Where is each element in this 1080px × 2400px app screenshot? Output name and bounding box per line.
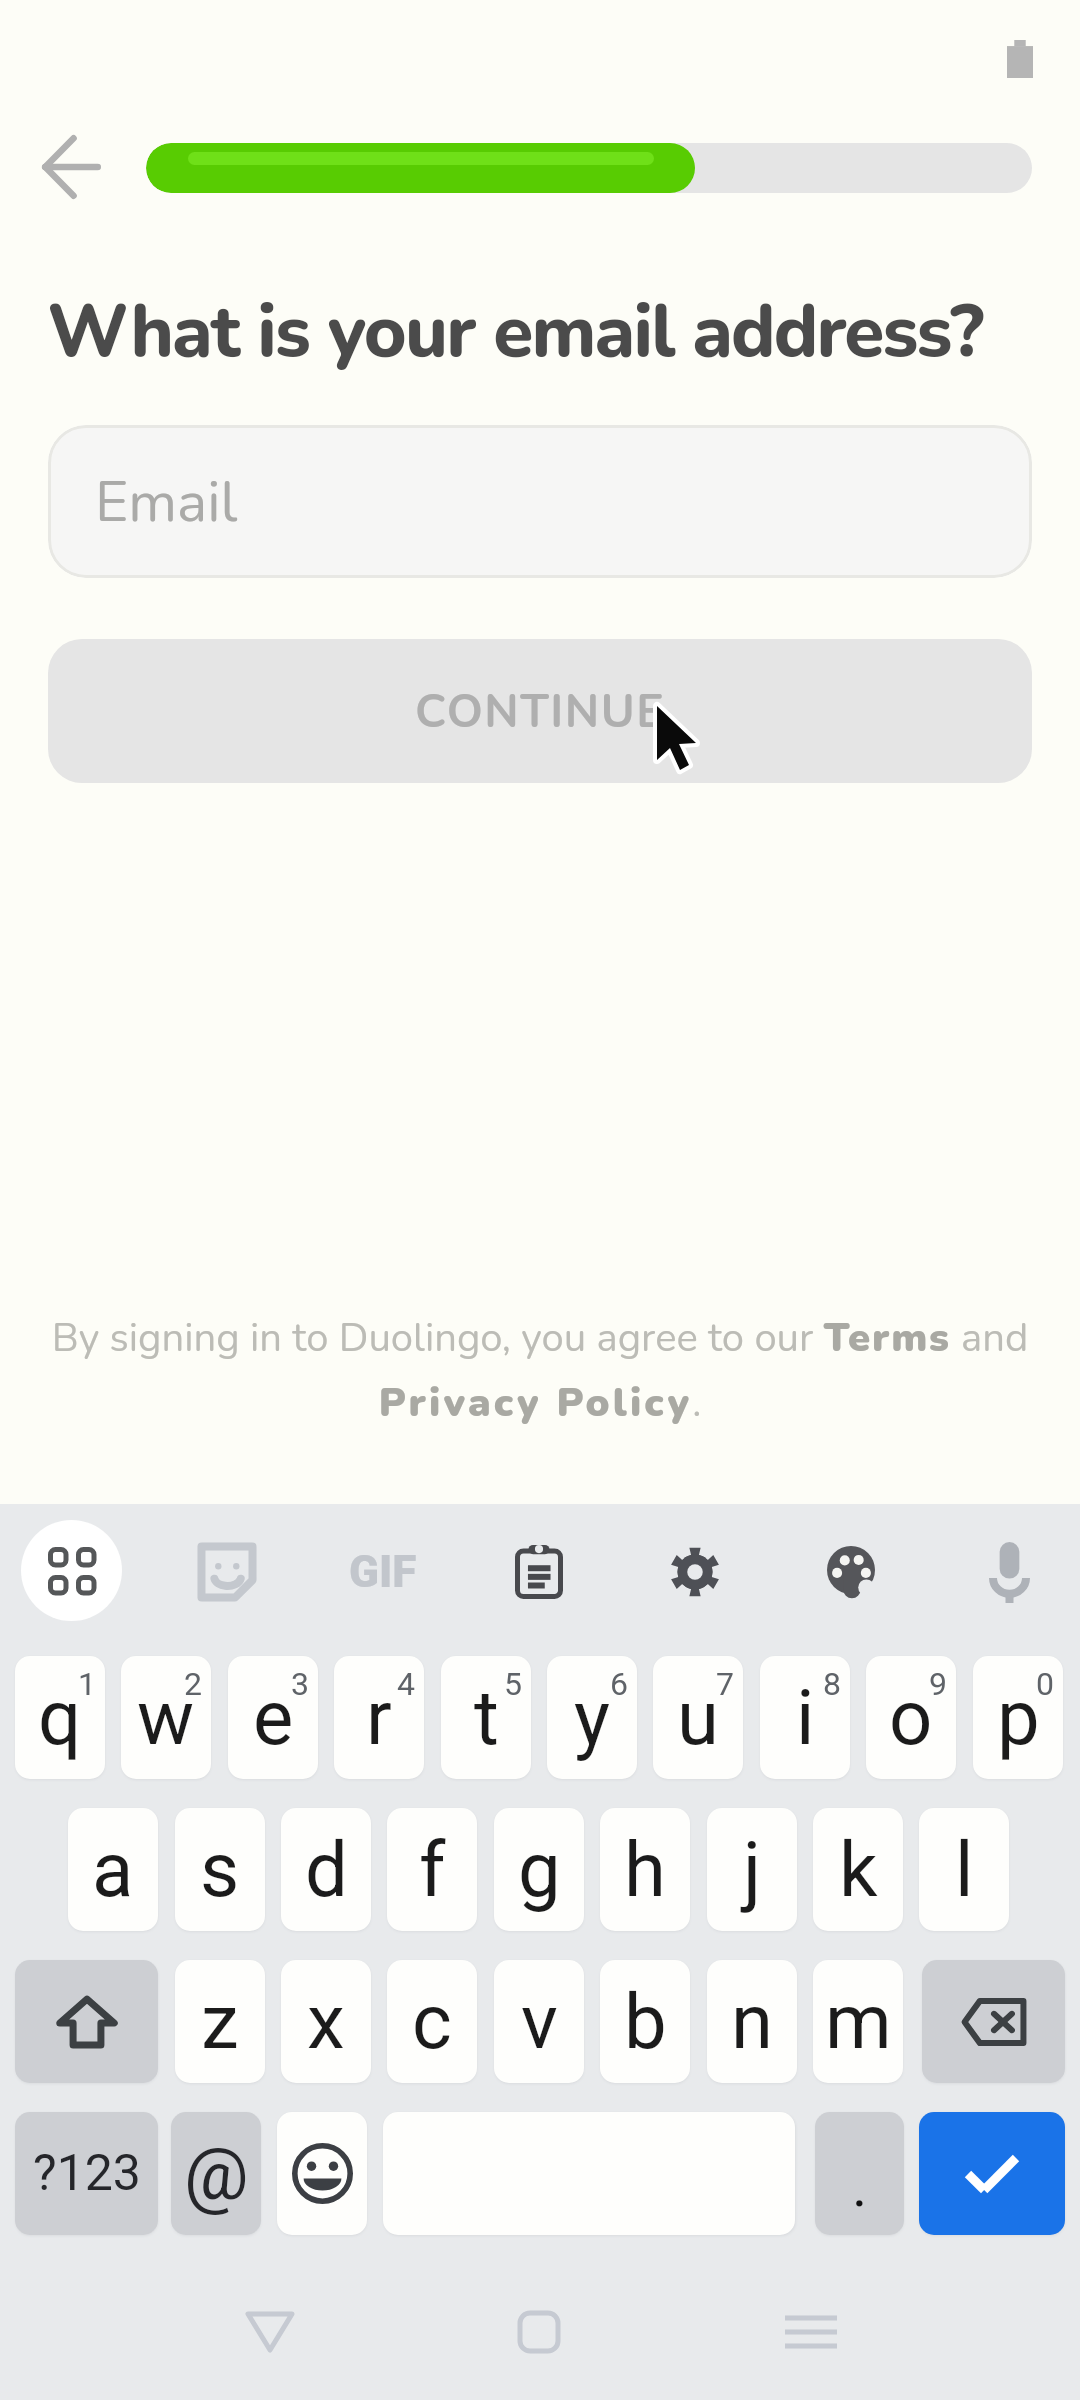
staticText: What is your email address? bbox=[47, 282, 983, 382]
staticText: f bbox=[419, 1825, 446, 1914]
button[interactable]: h bbox=[600, 1808, 690, 1931]
staticText: p bbox=[997, 1673, 1040, 1762]
button[interactable]: CONTINUE bbox=[48, 639, 1032, 783]
staticText: y bbox=[574, 1673, 610, 1762]
staticText: w bbox=[137, 1673, 195, 1762]
staticText: 6 bbox=[610, 1665, 628, 1703]
staticText: 9 bbox=[929, 1665, 947, 1703]
button[interactable]: Back bbox=[200, 2282, 340, 2382]
button[interactable]: s bbox=[175, 1808, 265, 1931]
staticText: CONTINUE bbox=[415, 680, 666, 743]
staticText: a bbox=[92, 1825, 134, 1914]
staticText: 4 bbox=[397, 1665, 415, 1703]
staticText: r bbox=[366, 1673, 392, 1762]
staticText: i bbox=[796, 1673, 815, 1762]
button[interactable]: Recent apps bbox=[741, 2282, 881, 2382]
staticText: 1 bbox=[78, 1665, 96, 1703]
button[interactable]: Stickers bbox=[160, 1513, 294, 1631]
button[interactable]: m bbox=[813, 1960, 903, 2083]
button[interactable]: v bbox=[494, 1960, 584, 2083]
button[interactable]: t bbox=[441, 1656, 531, 1779]
button[interactable]: Voice input bbox=[942, 1513, 1076, 1631]
staticText: 8 bbox=[823, 1665, 841, 1703]
staticText: n bbox=[731, 1977, 773, 2066]
button[interactable]: f bbox=[387, 1808, 477, 1931]
button[interactable]: q bbox=[15, 1656, 105, 1779]
staticText: d bbox=[305, 1825, 348, 1914]
button[interactable]: @ bbox=[171, 2112, 261, 2235]
button[interactable]: l bbox=[919, 1808, 1009, 1931]
staticText: o bbox=[889, 1673, 933, 1762]
staticText: ?123 bbox=[33, 2144, 141, 2203]
button[interactable]: u bbox=[653, 1656, 743, 1779]
staticText: g bbox=[518, 1825, 561, 1914]
button[interactable]: d bbox=[281, 1808, 371, 1931]
button[interactable]: g bbox=[494, 1808, 584, 1931]
staticText: h bbox=[624, 1825, 666, 1914]
button[interactable]: Themes bbox=[784, 1513, 918, 1631]
button[interactable]: Email bbox=[48, 425, 1032, 578]
staticText: 2 bbox=[184, 1665, 202, 1703]
button[interactable]: . bbox=[815, 2112, 904, 2235]
button[interactable]: j bbox=[707, 1808, 797, 1931]
button[interactable]: GIF bbox=[316, 1513, 450, 1631]
staticText: GIF bbox=[349, 1546, 417, 1598]
staticText: q bbox=[38, 1673, 82, 1762]
button[interactable]: x bbox=[281, 1960, 371, 2083]
staticText: c bbox=[412, 1977, 452, 2066]
staticText: 3 bbox=[291, 1665, 309, 1703]
staticText: t bbox=[474, 1673, 499, 1762]
staticText: By signing in to Duolingo, you agree to … bbox=[24, 1311, 1056, 1430]
staticText: @ bbox=[184, 2132, 249, 2216]
button[interactable]: o bbox=[866, 1656, 956, 1779]
button[interactable]: Clipboard bbox=[472, 1513, 606, 1631]
button[interactable]: Shift bbox=[15, 1960, 158, 2083]
button[interactable]: e bbox=[228, 1656, 318, 1779]
button[interactable]: Home bbox=[469, 2282, 609, 2382]
staticText: 0 bbox=[1036, 1665, 1054, 1703]
staticText: u bbox=[677, 1673, 719, 1762]
staticText: z bbox=[201, 1977, 239, 2066]
staticText: l bbox=[955, 1825, 974, 1914]
button[interactable]: p bbox=[973, 1656, 1063, 1779]
staticText: e bbox=[253, 1673, 294, 1762]
staticText: 5 bbox=[504, 1665, 522, 1703]
staticText: j bbox=[743, 1825, 762, 1914]
button[interactable]: ?123 bbox=[15, 2112, 158, 2235]
staticText: k bbox=[839, 1825, 878, 1914]
button[interactable]: Backspace bbox=[922, 1960, 1065, 2083]
button[interactable]: a bbox=[68, 1808, 158, 1931]
button[interactable]: i bbox=[760, 1656, 850, 1779]
button[interactable]: y bbox=[547, 1656, 637, 1779]
staticText: b bbox=[624, 1977, 667, 2066]
button[interactable]: n bbox=[707, 1960, 797, 2083]
button[interactable]: c bbox=[387, 1960, 477, 2083]
staticText: s bbox=[200, 1825, 240, 1914]
button[interactable]: k bbox=[813, 1808, 903, 1931]
staticText: . bbox=[852, 2152, 868, 2220]
button[interactable]: r bbox=[334, 1656, 424, 1779]
button[interactable]: z bbox=[175, 1960, 265, 2083]
button[interactable]: Emoji bbox=[277, 2112, 367, 2235]
staticText: x bbox=[307, 1977, 345, 2066]
staticText: m bbox=[825, 1977, 892, 2066]
staticText: v bbox=[521, 1977, 558, 2066]
button[interactable]: b bbox=[600, 1960, 690, 2083]
staticText: Email bbox=[95, 463, 238, 541]
button[interactable]: w bbox=[121, 1656, 211, 1779]
button[interactable]: Keyboard apps bbox=[21, 1520, 122, 1621]
button[interactable]: Enter bbox=[919, 2112, 1065, 2235]
button[interactable]: Keyboard settings bbox=[628, 1513, 762, 1631]
staticText: 7 bbox=[716, 1665, 734, 1703]
button[interactable]: Back bbox=[22, 118, 120, 216]
